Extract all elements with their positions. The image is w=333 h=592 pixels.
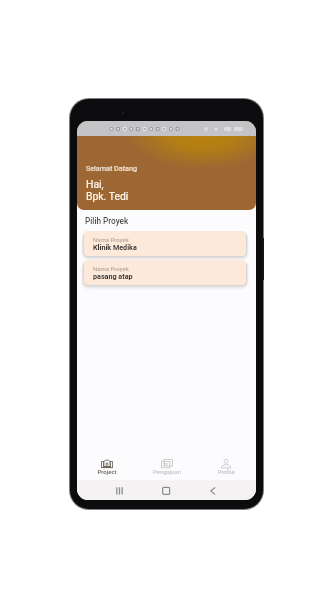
button[interactable] (84, 231, 246, 256)
staticText: Project (77, 468, 137, 478)
staticText: Pilih Proyek (85, 216, 129, 226)
button[interactable] (84, 260, 246, 285)
button[interactable]: Pengajuan (137, 455, 197, 477)
button[interactable]: Project (77, 455, 137, 477)
staticText: Klinik Medika (93, 243, 137, 251)
staticText: Bpk. Tedi (86, 190, 129, 202)
staticText: Profile (196, 468, 256, 478)
staticText: Nama Proyek (93, 265, 129, 272)
staticText: Selamat Datang (86, 164, 137, 172)
button[interactable]: Profile (196, 455, 256, 477)
staticText: Nama Proyek (93, 236, 129, 243)
staticText: Pengajuan (137, 468, 197, 478)
staticText: pasang atap (93, 272, 133, 280)
staticText: Hai, (86, 178, 104, 190)
